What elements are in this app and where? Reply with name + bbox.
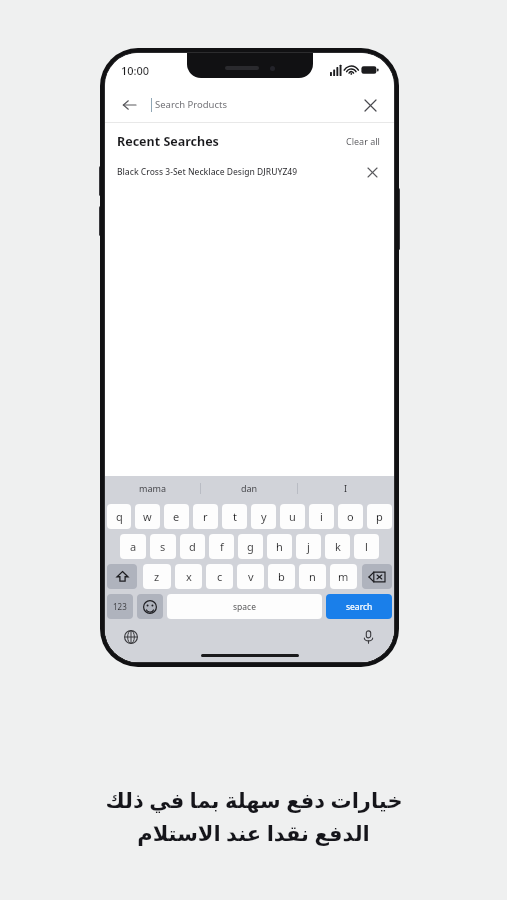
staticText: s xyxy=(160,539,166,554)
staticText: t xyxy=(233,509,237,524)
staticText: 10:00 xyxy=(121,63,150,78)
button[interactable]: mama xyxy=(105,476,200,500)
staticText: space xyxy=(233,601,256,613)
staticText: mama xyxy=(139,482,166,494)
button[interactable]: l xyxy=(354,534,379,559)
button[interactable]: x xyxy=(175,564,202,589)
button[interactable]: c xyxy=(206,564,233,589)
staticText: f xyxy=(220,539,224,554)
button[interactable]: u xyxy=(280,504,305,529)
button[interactable]: w xyxy=(135,504,160,529)
button[interactable]: b xyxy=(268,564,295,589)
button[interactable]: o xyxy=(338,504,363,529)
button[interactable]: h xyxy=(267,534,292,559)
button[interactable]: j xyxy=(296,534,321,559)
staticText: i xyxy=(320,509,323,524)
staticText: z xyxy=(154,569,160,584)
staticText: x xyxy=(186,569,192,584)
button[interactable]: f xyxy=(209,534,234,559)
staticText: o xyxy=(347,509,354,524)
button[interactable]: s xyxy=(150,534,176,559)
button[interactable]: k xyxy=(325,534,350,559)
button[interactable]: r xyxy=(193,504,218,529)
staticText: b xyxy=(278,569,285,584)
button[interactable]: n xyxy=(299,564,326,589)
button[interactable]: t xyxy=(222,504,247,529)
staticText: خيارات دفع سهلة بما في ذلك xyxy=(105,786,403,815)
staticText: w xyxy=(143,509,152,524)
button[interactable]: v xyxy=(237,564,264,589)
button[interactable]: y xyxy=(251,504,276,529)
staticText: u xyxy=(289,509,296,524)
button[interactable]: Clear all xyxy=(344,133,382,149)
button[interactable]: e xyxy=(164,504,189,529)
button[interactable]: q xyxy=(107,504,131,529)
staticText: m xyxy=(338,569,349,584)
staticText: a xyxy=(130,539,137,554)
staticText: j xyxy=(307,539,310,554)
staticText: c xyxy=(217,569,223,584)
staticText: h xyxy=(276,539,283,554)
button[interactable]: Search Products xyxy=(155,98,358,111)
staticText: k xyxy=(335,539,341,554)
button[interactable]: m xyxy=(330,564,357,589)
button[interactable]: Key xyxy=(107,564,137,589)
button[interactable]: Voice input xyxy=(358,627,378,647)
button[interactable]: I xyxy=(298,476,394,500)
staticText: I xyxy=(344,482,348,494)
button[interactable]: Clear search xyxy=(358,93,382,117)
staticText: v xyxy=(248,569,254,584)
button[interactable]: Key xyxy=(137,594,163,619)
button[interactable]: Black Cross 3-Set Necklace Design DJRUYZ… xyxy=(105,159,394,185)
button[interactable]: Remove recent search xyxy=(362,162,382,182)
button[interactable]: a xyxy=(120,534,146,559)
staticText: Search Products xyxy=(155,98,228,111)
button[interactable]: Key xyxy=(362,564,392,589)
staticText: dan xyxy=(241,482,258,494)
button[interactable]: d xyxy=(180,534,205,559)
staticText: g xyxy=(247,539,254,554)
button[interactable]: z xyxy=(143,564,171,589)
button[interactable]: search xyxy=(326,594,392,619)
staticText: d xyxy=(189,539,196,554)
staticText: الدفع نقدا عند الاستلام xyxy=(137,819,370,848)
button[interactable]: g xyxy=(238,534,263,559)
staticText: y xyxy=(261,509,267,524)
button[interactable]: Change keyboard xyxy=(121,627,141,647)
button[interactable]: i xyxy=(309,504,334,529)
staticText: r xyxy=(203,509,208,524)
staticText: q xyxy=(116,509,123,524)
staticText: Black Cross 3-Set Necklace Design DJRUYZ… xyxy=(117,166,297,178)
button[interactable]: Key xyxy=(107,594,133,619)
button[interactable]: Back xyxy=(117,93,141,117)
staticText: p xyxy=(376,509,383,524)
staticText: e xyxy=(173,509,180,524)
staticText: search xyxy=(346,601,373,613)
button[interactable]: p xyxy=(367,504,392,529)
staticText: n xyxy=(309,569,316,584)
button[interactable]: space xyxy=(167,594,322,619)
staticText: l xyxy=(365,539,368,554)
staticText: 123 xyxy=(113,601,127,612)
button[interactable]: dan xyxy=(201,476,297,500)
staticText: Clear all xyxy=(346,135,380,147)
staticText: Recent Searches xyxy=(117,133,219,150)
